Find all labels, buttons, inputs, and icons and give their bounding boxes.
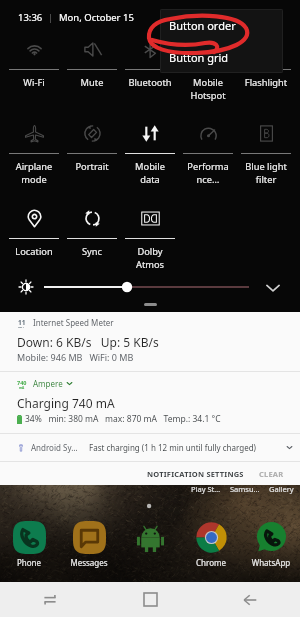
staticText: Wi-Fi: [5, 76, 63, 89]
button[interactable]: Bluetooth: [121, 36, 179, 114]
staticText: Play St…: [191, 484, 221, 494]
staticText: 11: [18, 318, 26, 327]
staticText: 34% min: 380 mA max: 870 mA Temp.: 34.1 …: [25, 413, 221, 425]
staticText: Location: [5, 245, 63, 258]
staticText: 13:36: [18, 11, 43, 24]
button[interactable]: Mute: [63, 36, 121, 114]
button[interactable]: Button order: [160, 9, 283, 41]
staticText: Mute: [63, 76, 121, 89]
staticText: Sync: [63, 245, 121, 258]
staticText: Chrome: [183, 557, 239, 568]
button[interactable]: Portrait: [63, 120, 121, 198]
button[interactable]: Sync: [63, 205, 121, 283]
button[interactable]: Blue light filter: [237, 120, 295, 198]
staticText: Mobile: 946 MB WiFi: 0 MB: [17, 351, 134, 363]
button[interactable]: 740: [0, 372, 300, 433]
button[interactable]: Expand quick settings: [264, 279, 282, 297]
button[interactable]: Chrome: [183, 521, 239, 568]
staticText: NOTIFICATION SETTINGS: [147, 469, 244, 479]
button[interactable]: Button grid: [160, 41, 283, 73]
button[interactable]: Dolby Atmos: [121, 205, 179, 283]
button[interactable]: Phone: [1, 521, 57, 568]
staticText: |: [48, 11, 54, 24]
staticText: Down: 6 KB/s Up: 5 KB/s: [17, 334, 159, 350]
staticText: Internet Speed Meter: [33, 317, 114, 328]
staticText: Flashlight: [237, 76, 295, 89]
button[interactable]: 11: [0, 312, 300, 371]
staticText: WhatsApp: [243, 557, 299, 568]
staticText: Performa nce…: [179, 160, 237, 185]
staticText: Button order: [169, 18, 236, 33]
staticText: Messages: [61, 557, 117, 568]
staticText: Charging 740 mA: [17, 395, 115, 411]
staticText: 740: [17, 379, 27, 386]
button[interactable]: Back: [200, 582, 300, 617]
button[interactable]: CLEAR: [254, 465, 289, 483]
staticText: Fast charging (1 h 12 min until fully ch…: [89, 442, 256, 453]
button[interactable]: Mobile data: [121, 120, 179, 198]
staticText: Mon, October 15: [59, 11, 134, 24]
button[interactable]: WhatsApp: [243, 521, 299, 568]
button[interactable]: Mobile Hotspot: [179, 36, 237, 114]
staticText: Samsu…: [230, 484, 260, 494]
button[interactable]: Performa nce…: [179, 120, 237, 198]
button[interactable]: Airplane mode: [5, 120, 63, 198]
staticText: Button grid: [169, 50, 229, 65]
button[interactable]: Wi-Fi: [5, 36, 63, 114]
button[interactable]: Messages: [61, 521, 117, 568]
staticText: mA: [19, 386, 25, 389]
button[interactable]: [122, 521, 178, 568]
button[interactable]: NOTIFICATION SETTINGS: [142, 465, 249, 483]
staticText: [122, 557, 178, 568]
staticText: Airplane mode: [5, 160, 63, 185]
staticText: Dolby Atmos: [121, 245, 179, 270]
staticText: Bluetooth: [121, 76, 179, 89]
staticText: Blue light filter: [237, 160, 295, 185]
staticText: Portrait: [63, 160, 121, 173]
staticText: Android Sy…: [31, 442, 78, 453]
staticText: Phone: [1, 557, 57, 568]
button[interactable]: Android Sy…: [0, 434, 300, 461]
staticText: Gallery: [269, 484, 294, 494]
staticText: KB/s: [18, 327, 26, 328]
staticText: Mobile Hotspot: [179, 76, 237, 101]
button[interactable]: Flashlight: [237, 36, 295, 114]
staticText: Mobile data: [121, 160, 179, 185]
button[interactable]: Recents: [0, 582, 100, 617]
staticText: CLEAR: [259, 469, 284, 479]
button[interactable]: Location: [5, 205, 63, 283]
button[interactable]: Home: [100, 582, 200, 617]
staticText: Ampere: [33, 378, 63, 389]
